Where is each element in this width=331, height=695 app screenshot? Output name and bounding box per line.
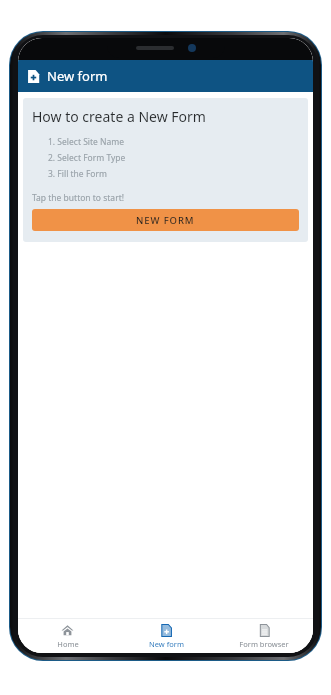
- button[interactable]: Home: [18, 619, 117, 653]
- button[interactable]: Form browser: [215, 619, 313, 653]
- button[interactable]: NEW FORM: [32, 209, 299, 231]
- staticText: Tap the button to start!: [32, 192, 124, 204]
- button[interactable]: New form: [117, 619, 215, 653]
- staticText: New form: [149, 639, 184, 649]
- staticText: 3. Fill the Form: [48, 168, 107, 180]
- staticText: New form: [47, 67, 108, 85]
- staticText: Form browser: [239, 639, 289, 649]
- staticText: Home: [57, 639, 79, 649]
- staticText: NEW FORM: [136, 214, 195, 227]
- staticText: 2. Select Form Type: [48, 152, 126, 164]
- staticText: How to create a New Form: [32, 107, 206, 126]
- staticText: 1. Select Site Name: [48, 136, 125, 148]
